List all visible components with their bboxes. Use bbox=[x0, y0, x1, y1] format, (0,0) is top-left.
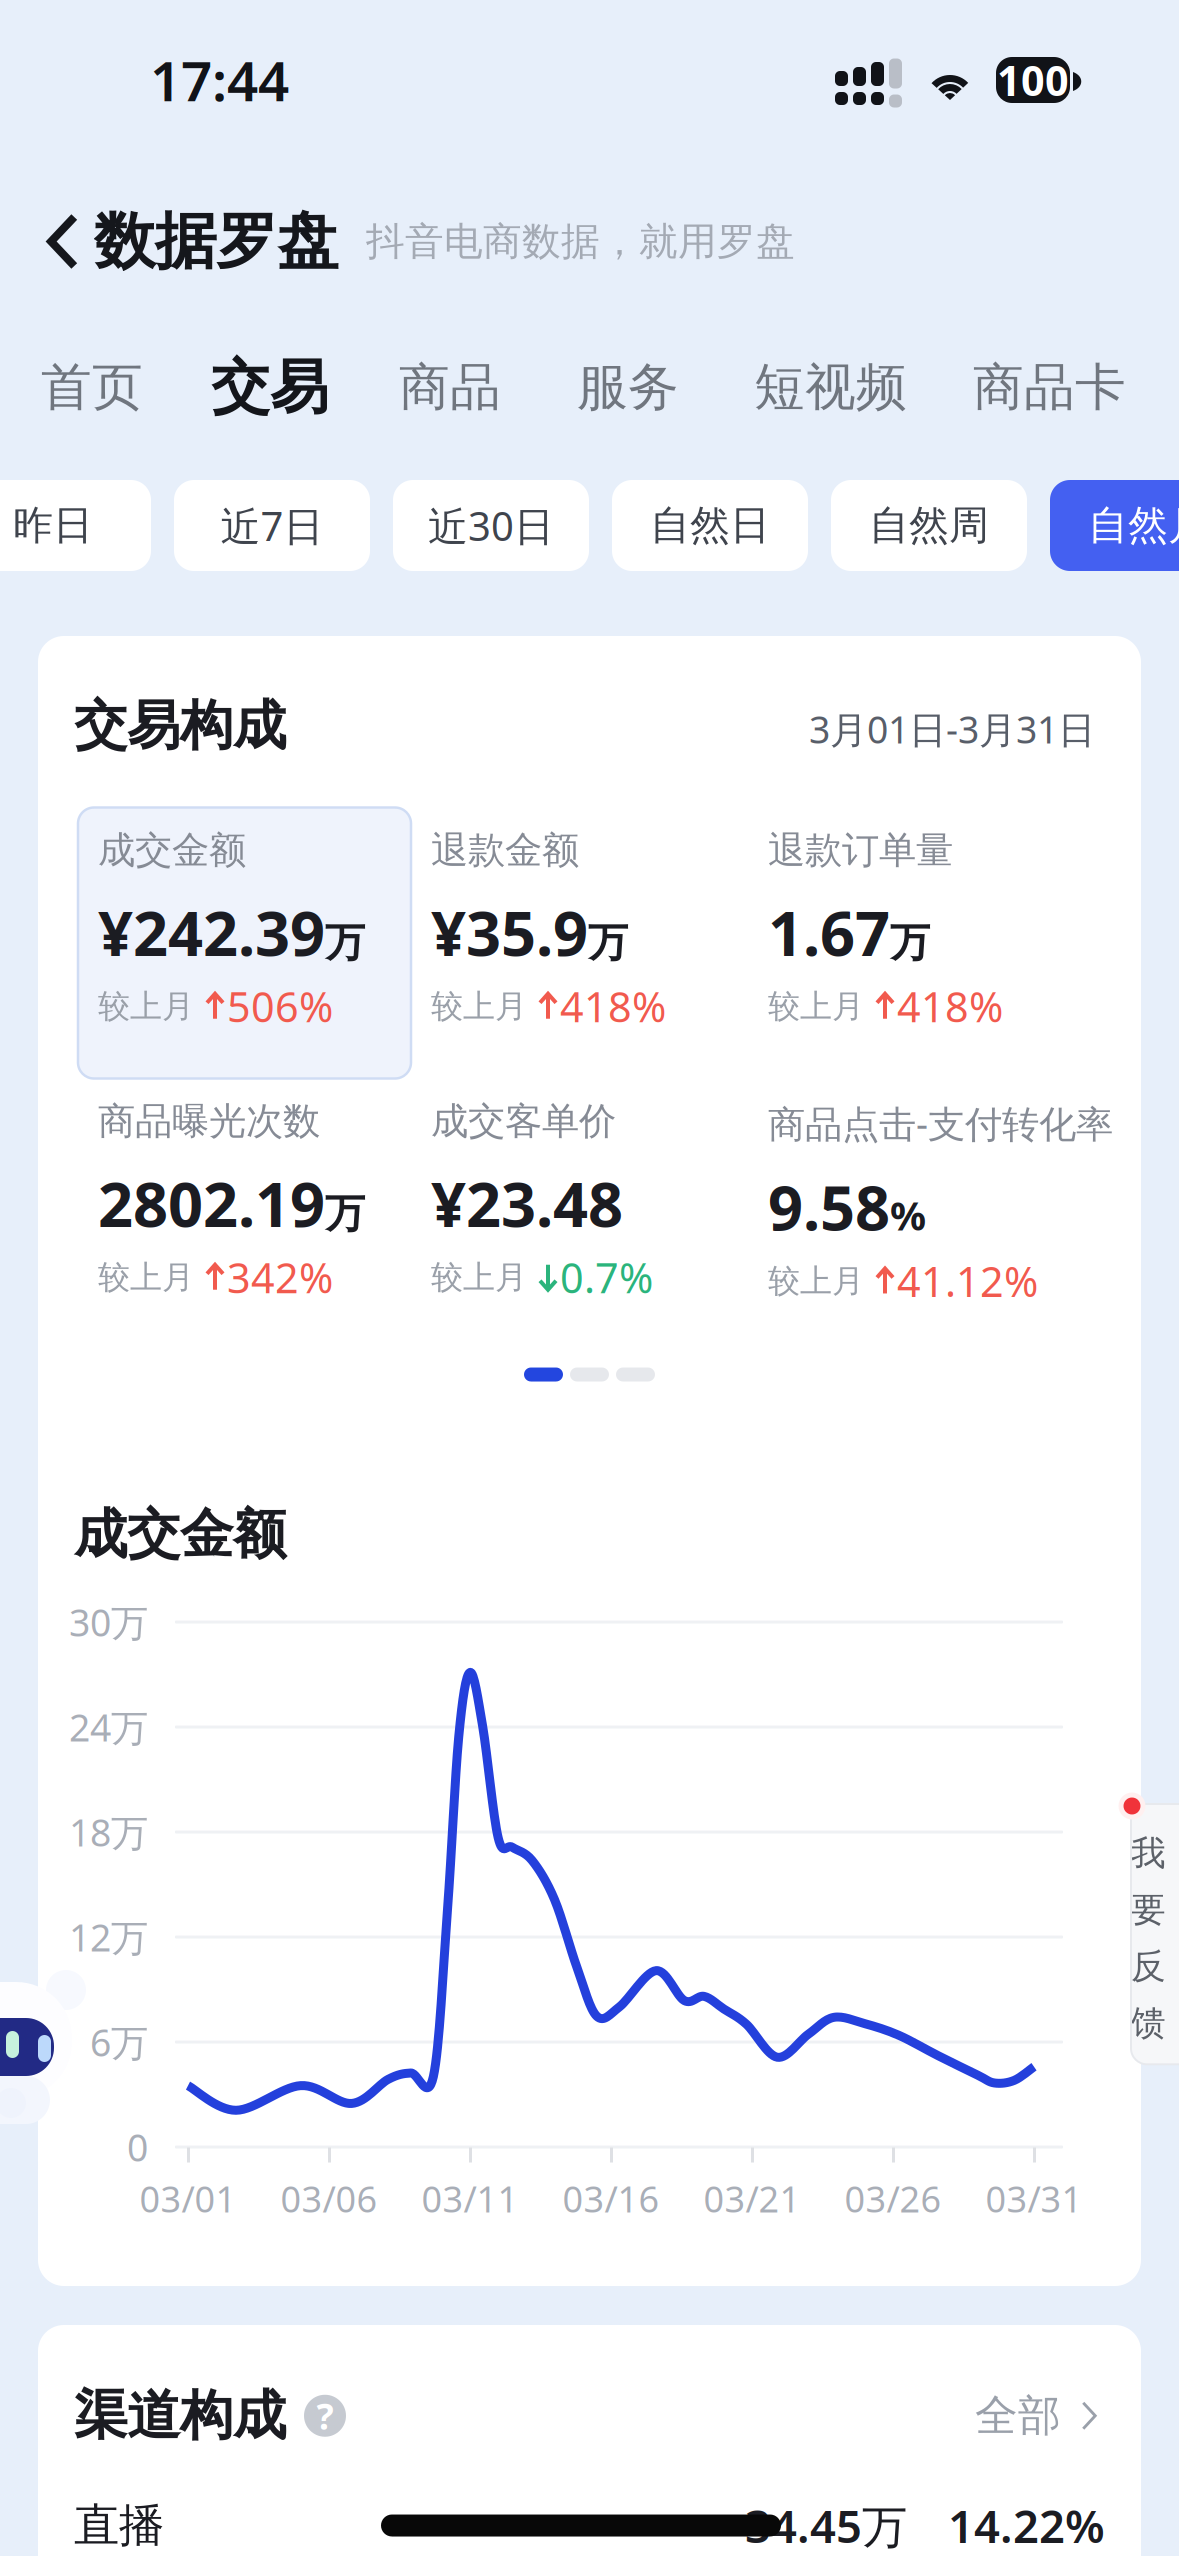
staticText: ? bbox=[316, 2392, 333, 2440]
staticText: 成交金额 bbox=[74, 1502, 286, 1567]
staticText: 418% bbox=[560, 979, 666, 1034]
staticText: 反 bbox=[1131, 1945, 1166, 1988]
staticText: 较上月 bbox=[768, 987, 864, 1026]
staticText: 较上月 bbox=[768, 1261, 864, 1301]
staticText: 馈 bbox=[1131, 2002, 1166, 2044]
staticText: ¥242.39 bbox=[98, 891, 325, 973]
button[interactable]: 近30日 bbox=[393, 480, 589, 571]
staticText: 近30日 bbox=[428, 499, 554, 552]
button[interactable]: 成交客单价 bbox=[411, 1078, 748, 1333]
staticText: 03/11 bbox=[421, 2175, 518, 2222]
button[interactable]: 全部 bbox=[975, 2390, 1101, 2442]
staticText: 抖音电商数据，就用罗盘 bbox=[366, 218, 795, 265]
staticText: 退款订单量 bbox=[768, 827, 953, 873]
staticText: 较上月 bbox=[431, 987, 527, 1026]
staticText: 342% bbox=[227, 1250, 333, 1305]
staticText: 首页 bbox=[41, 356, 143, 419]
button[interactable]: 短视频 bbox=[754, 356, 907, 419]
button[interactable]: 商品卡 bbox=[973, 356, 1126, 419]
staticText: 506% bbox=[227, 979, 333, 1034]
staticText: 直播 bbox=[74, 2498, 164, 2553]
staticText: 自然日 bbox=[650, 501, 770, 550]
button[interactable]: 首页 bbox=[41, 356, 143, 419]
staticText: 交易构成 bbox=[74, 693, 286, 758]
staticText: 1.67 bbox=[768, 891, 890, 973]
staticText: 较上月 bbox=[431, 1258, 527, 1297]
button[interactable]: 我要反馈 bbox=[1110, 1795, 1179, 2064]
staticText: 24万 bbox=[69, 1702, 148, 1752]
staticText: 03/21 bbox=[703, 2175, 800, 2222]
button[interactable]: 成交金额 bbox=[78, 807, 411, 1078]
staticText: 万 bbox=[325, 918, 365, 967]
staticText: 100 bbox=[997, 53, 1069, 107]
staticText: 03/01 bbox=[139, 2175, 236, 2222]
button[interactable]: 商品点击-支付转化率 bbox=[748, 1078, 1148, 1333]
staticText: 41.12% bbox=[897, 1253, 1038, 1308]
staticText: 03/06 bbox=[280, 2175, 377, 2222]
staticText: 418% bbox=[897, 979, 1003, 1034]
staticText: % bbox=[890, 1188, 926, 1242]
button[interactable]: 自然月 bbox=[1050, 480, 1179, 571]
staticText: 数据罗盘 bbox=[94, 204, 338, 279]
staticText: 万 bbox=[890, 918, 930, 967]
staticText: 万 bbox=[325, 1189, 365, 1238]
staticText: 03/26 bbox=[844, 2175, 941, 2222]
button[interactable]: 交易 bbox=[211, 351, 329, 424]
staticText: ¥23.48 bbox=[431, 1162, 623, 1244]
staticText: 退款金额 bbox=[431, 827, 579, 873]
staticText: 成交金额 bbox=[98, 827, 246, 873]
button[interactable]: 服务 bbox=[577, 356, 679, 419]
staticText: 要 bbox=[1131, 1889, 1166, 1931]
staticText: 成交客单价 bbox=[431, 1098, 616, 1144]
staticText: 14.22% bbox=[948, 2495, 1105, 2556]
staticText: 12万 bbox=[69, 1912, 148, 1962]
staticText: 交易 bbox=[211, 351, 329, 424]
button[interactable]: 自然周 bbox=[831, 480, 1027, 571]
button[interactable]: 昨日 bbox=[0, 480, 151, 571]
staticText: 短视频 bbox=[754, 356, 907, 419]
staticText: 较上月 bbox=[98, 987, 194, 1026]
staticText: 18万 bbox=[69, 1807, 148, 1857]
button[interactable]: 商品曝光次数 bbox=[78, 1078, 411, 1333]
staticText: 9.58 bbox=[768, 1166, 890, 1247]
button[interactable]: 商品 bbox=[399, 356, 501, 419]
button[interactable]: 退款订单量 bbox=[748, 807, 1085, 1078]
staticText: 34.45万 bbox=[745, 2495, 907, 2556]
staticText: 渠道构成 bbox=[74, 2383, 286, 2448]
staticText: ¥35.9 bbox=[431, 891, 588, 973]
staticText: 较上月 bbox=[98, 1258, 194, 1297]
button[interactable]: 退款金额 bbox=[411, 807, 748, 1078]
staticText: 商品曝光次数 bbox=[98, 1098, 320, 1144]
staticText: 我 bbox=[1131, 1832, 1166, 1875]
staticText: 商品 bbox=[399, 356, 501, 419]
staticText: 0 bbox=[127, 2122, 148, 2172]
staticText: 万 bbox=[588, 918, 628, 967]
staticText: 商品卡 bbox=[973, 356, 1126, 419]
staticText: 0.7% bbox=[560, 1250, 653, 1305]
staticText: 商品点击-支付转化率 bbox=[768, 1098, 1113, 1148]
button[interactable]: 数据罗盘 bbox=[94, 204, 338, 279]
staticText: 服务 bbox=[577, 356, 679, 419]
button[interactable]: 返回 bbox=[30, 186, 94, 296]
button[interactable]: 自然日 bbox=[612, 480, 808, 571]
staticText: 03/31 bbox=[985, 2175, 1082, 2222]
staticText: 自然周 bbox=[869, 501, 989, 550]
staticText: 昨日 bbox=[13, 501, 93, 550]
staticText: 近7日 bbox=[220, 499, 323, 552]
staticText: 自然月 bbox=[1088, 501, 1179, 550]
staticText: 17:44 bbox=[150, 44, 289, 116]
button[interactable]: 近7日 bbox=[174, 480, 370, 571]
staticText: 03/16 bbox=[562, 2175, 659, 2222]
staticText: 2802.19 bbox=[98, 1162, 325, 1244]
staticText: 3月01日-3月31日 bbox=[809, 704, 1095, 754]
staticText: 全部 bbox=[975, 2390, 1061, 2442]
staticText: 30万 bbox=[69, 1597, 148, 1647]
staticText: 6万 bbox=[90, 2017, 148, 2067]
